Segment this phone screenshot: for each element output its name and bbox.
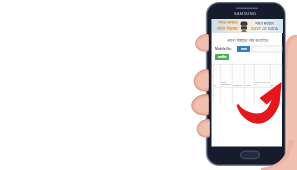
staticText: STATUS (271, 83, 280, 86)
staticText: # (214, 83, 216, 86)
staticText: SAMSUNG (234, 11, 257, 17)
staticText: CONNECTION (255, 80, 270, 86)
button[interactable]: भारत (237, 46, 250, 52)
staticText: TYPE (245, 83, 251, 86)
staticText: Mobile No. (215, 47, 232, 51)
staticText: GOVT. OF INDIA (251, 26, 278, 31)
button[interactable]: सबमिट (215, 54, 229, 60)
staticText: भारत सरकार (218, 20, 238, 26)
staticText: MOBILE (233, 83, 243, 86)
staticText: भारत सरकार (255, 21, 274, 26)
staticText: सबमिट (218, 55, 227, 59)
staticText: अपना मोबाइल नंबर सत्यापित (212, 38, 283, 43)
staticText: भारत (241, 47, 247, 51)
staticText: Mob Number (221, 80, 231, 86)
staticText: संचार मंत्रालय (217, 26, 238, 32)
other: Hand holding a smartphone showing a gove… (0, 0, 297, 170)
